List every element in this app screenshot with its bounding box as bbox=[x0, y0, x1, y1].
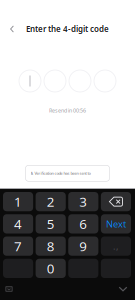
staticText: Enter the 4-digit code bbox=[26, 24, 109, 34]
button[interactable]: 5 bbox=[36, 214, 66, 233]
staticText: Next bbox=[106, 218, 126, 230]
staticText: 2 bbox=[47, 193, 55, 210]
button[interactable]: 7 bbox=[3, 236, 33, 256]
staticText: 1 bbox=[14, 193, 22, 210]
staticText: 5 bbox=[47, 215, 55, 233]
staticText: 7 bbox=[14, 237, 22, 255]
button[interactable]: ., bbox=[101, 236, 131, 256]
button[interactable]: Dismiss keyboard bbox=[115, 281, 131, 297]
button[interactable]: 1 bbox=[3, 192, 33, 211]
button[interactable]: Back bbox=[4, 21, 20, 37]
button[interactable]: A Verification code has been sent to bbox=[25, 165, 109, 181]
staticText: Resend in 00:56 bbox=[49, 107, 86, 114]
staticText: 8 bbox=[47, 237, 55, 255]
button[interactable]: 0 bbox=[36, 259, 66, 278]
button[interactable]: Next bbox=[101, 214, 131, 233]
staticText: 6 bbox=[79, 215, 87, 233]
button[interactable]: Keyboard settings bbox=[1, 281, 17, 297]
staticText: 3 bbox=[79, 193, 87, 210]
button[interactable]: 3 bbox=[68, 192, 98, 211]
staticText: A Verification code has been sent to bbox=[30, 171, 90, 176]
button[interactable]: Delete bbox=[101, 192, 131, 211]
button[interactable]: 4 bbox=[3, 214, 33, 233]
staticText: 4 bbox=[14, 215, 22, 233]
button[interactable]: 6 bbox=[68, 214, 98, 233]
button[interactable]: 8 bbox=[36, 236, 66, 256]
staticText: 9 bbox=[79, 237, 87, 255]
staticText: 0 bbox=[47, 259, 55, 277]
button[interactable]: 9 bbox=[68, 236, 98, 256]
staticText: ., bbox=[113, 240, 119, 252]
button[interactable]: 2 bbox=[36, 192, 66, 211]
